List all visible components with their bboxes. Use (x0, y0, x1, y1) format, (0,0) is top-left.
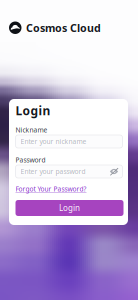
staticText: Password (15, 156, 45, 164)
staticText: Enter your nickname (20, 137, 86, 146)
button[interactable]: Login (15, 200, 123, 216)
staticText: Cosmos Cloud (26, 21, 101, 35)
staticText: Nickname (15, 126, 47, 134)
staticText: Enter your password (20, 167, 85, 176)
staticText: Forgot Your Password? (15, 185, 86, 193)
staticText: Login (15, 102, 50, 118)
staticText: Login (59, 203, 80, 213)
button[interactable]: Forgot Your Password? (15, 186, 86, 192)
